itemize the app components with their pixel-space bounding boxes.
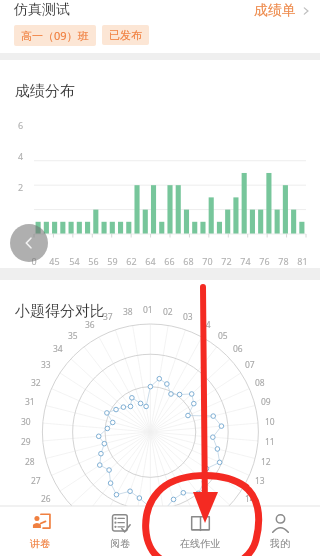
staticText: 09: [261, 396, 271, 408]
staticText: 30: [21, 416, 31, 428]
staticText: 02: [163, 306, 173, 318]
staticText: 56: [88, 255, 99, 267]
staticText: 4: [18, 150, 24, 162]
staticText: 59: [107, 255, 118, 267]
staticText: 17: [201, 533, 211, 545]
staticText: 08: [255, 377, 265, 389]
staticText: 05: [218, 330, 228, 342]
staticText: 2: [18, 181, 24, 193]
button[interactable]: 成绩单: [254, 2, 312, 20]
staticText: 06: [233, 343, 243, 355]
staticText: 81: [297, 255, 308, 267]
staticText: 成绩分布: [15, 82, 75, 101]
button[interactable]: Back: [10, 224, 48, 262]
staticText: 11: [265, 436, 275, 448]
staticText: 成绩单: [254, 2, 296, 20]
staticText: 已发布: [109, 28, 142, 42]
staticText: 讲卷: [30, 537, 50, 550]
staticText: 74: [240, 255, 251, 267]
staticText: 32: [31, 377, 41, 389]
staticText: 0: [31, 255, 37, 267]
staticText: 20: [143, 548, 153, 556]
staticText: 70: [202, 255, 213, 267]
staticText: 26: [41, 493, 51, 505]
staticText: 04: [201, 319, 211, 331]
staticText: 高一（09）班: [21, 28, 89, 43]
staticText: 33: [41, 359, 51, 371]
staticText: 阅卷: [110, 537, 130, 550]
staticText: 68: [183, 255, 194, 267]
staticText: 64: [145, 255, 156, 267]
staticText: 14: [245, 493, 255, 505]
button[interactable]: 阅卷: [80, 506, 160, 556]
staticText: 6: [18, 119, 24, 131]
staticText: 31: [25, 396, 35, 408]
staticText: 10: [265, 416, 275, 428]
staticText: 36: [85, 319, 95, 331]
staticText: 78: [278, 255, 289, 267]
staticText: 34: [53, 343, 63, 355]
staticText: 13: [255, 475, 265, 487]
staticText: 我的: [270, 537, 290, 550]
button[interactable]: 我的: [240, 506, 320, 556]
staticText: 45: [49, 255, 60, 267]
staticText: 27: [31, 475, 41, 487]
staticText: 03: [183, 311, 193, 323]
staticText: 22: [103, 541, 113, 553]
staticText: 21: [123, 546, 133, 556]
staticText: 在线作业: [180, 537, 220, 550]
staticText: 01: [143, 304, 153, 316]
staticText: 35: [68, 330, 78, 342]
staticText: 小题得分对比: [15, 302, 105, 321]
staticText: 72: [221, 255, 232, 267]
staticText: 07: [245, 359, 255, 371]
button[interactable]: 讲卷: [0, 506, 80, 556]
staticText: 仿真测试: [14, 1, 70, 19]
staticText: 37: [103, 311, 113, 323]
staticText: 12: [261, 456, 271, 468]
staticText: 28: [25, 456, 35, 468]
staticText: 66: [164, 255, 175, 267]
staticText: 62: [126, 255, 137, 267]
staticText: 54: [69, 255, 80, 267]
staticText: 76: [259, 255, 270, 267]
staticText: 18: [183, 541, 193, 553]
staticText: 38: [123, 306, 133, 318]
staticText: 29: [21, 436, 31, 448]
button[interactable]: 在线作业: [160, 506, 240, 556]
